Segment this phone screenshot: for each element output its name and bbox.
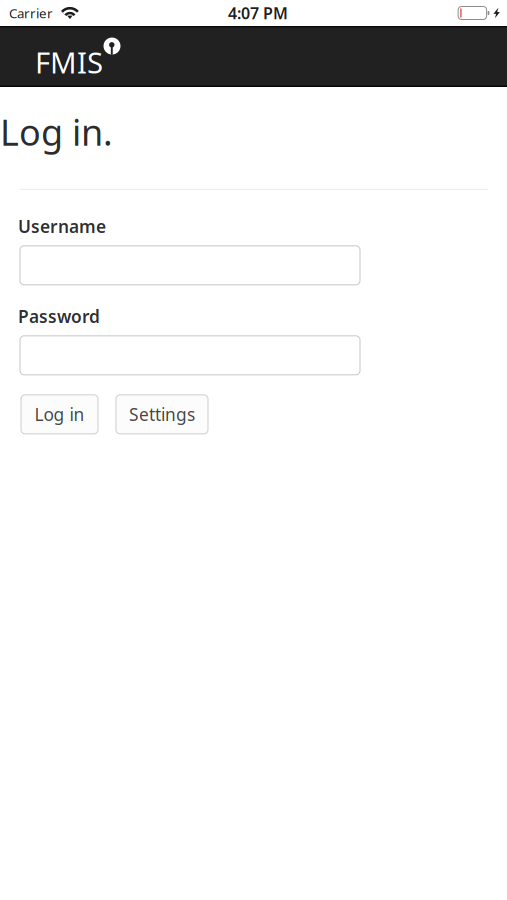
- staticText: FMIS: [35, 42, 103, 81]
- staticText: Settings: [129, 403, 195, 426]
- button[interactable]: Log in: [21, 395, 98, 434]
- staticText: Log in: [34, 403, 84, 426]
- staticText: 4:07 PM: [228, 2, 288, 24]
- button[interactable]: Settings: [116, 395, 208, 434]
- staticText: Log in.: [0, 108, 113, 156]
- staticText: Username: [18, 215, 106, 238]
- staticText: Carrier: [9, 4, 53, 22]
- staticText: Password: [18, 305, 100, 328]
